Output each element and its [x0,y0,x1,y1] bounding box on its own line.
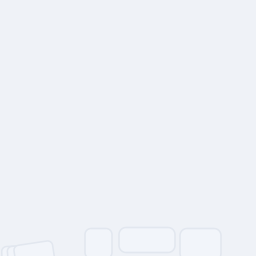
button[interactable]: Item [119,227,175,252]
button[interactable]: Item [85,228,112,256]
button[interactable]: Card [2,246,42,256]
button[interactable]: Item [180,228,221,256]
button[interactable]: Card [8,245,48,256]
button[interactable]: Card [15,243,54,256]
